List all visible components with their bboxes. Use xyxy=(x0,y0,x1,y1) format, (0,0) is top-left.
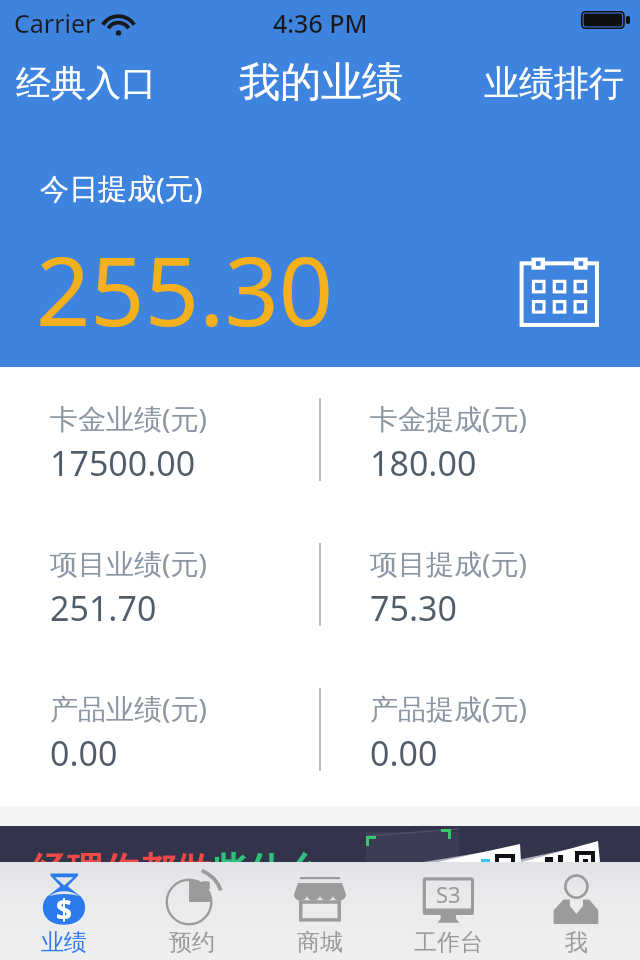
staticText: 预约 xyxy=(169,928,215,957)
staticText: 17500.00 xyxy=(50,440,196,486)
staticText: 255.30 xyxy=(36,224,334,353)
staticText: 75.30 xyxy=(370,585,457,631)
button[interactable]: 我 xyxy=(512,862,640,960)
staticText: 项目业绩(元) xyxy=(50,544,207,582)
staticText: 经典入口 xyxy=(16,61,156,105)
button[interactable]: S3 xyxy=(384,862,512,960)
button[interactable]: 项目提成(元) xyxy=(320,512,640,657)
button[interactable]: 卡金提成(元) xyxy=(320,367,640,512)
other: Battery xyxy=(581,11,630,29)
staticText: 工作台 xyxy=(414,928,483,957)
staticText: 卡金提成(元) xyxy=(370,399,527,437)
staticText: 我 xyxy=(565,928,588,957)
button[interactable]: 卡金业绩(元) xyxy=(0,367,320,512)
staticText: 项目提成(元) xyxy=(370,544,527,582)
staticText: 些什么 xyxy=(211,848,319,862)
staticText: 今日提成(元) xyxy=(40,168,203,208)
button[interactable]: 商城 xyxy=(256,862,384,960)
staticText: 业绩排行 xyxy=(484,61,624,105)
button[interactable]: 产品业绩(元) xyxy=(0,657,320,802)
staticText: S3 xyxy=(436,879,461,909)
button[interactable]: 我的业绩 xyxy=(214,57,427,109)
staticText: 产品业绩(元) xyxy=(50,689,207,727)
button[interactable]: Promotion banner xyxy=(0,826,640,862)
staticText: 4:36 PM xyxy=(273,6,368,40)
staticText: $ xyxy=(56,890,73,928)
staticText: 商城 xyxy=(297,928,343,957)
other: Calendar xyxy=(518,254,602,328)
button[interactable]: 经典入口 xyxy=(0,61,214,105)
staticText: 我的业绩 xyxy=(239,57,403,109)
staticText: 180.00 xyxy=(370,440,477,486)
staticText: 业绩 xyxy=(41,928,87,957)
staticText: 0.00 xyxy=(50,730,118,776)
button[interactable]: 预约 xyxy=(128,862,256,960)
staticText: 0.00 xyxy=(370,730,438,776)
button[interactable]: $ xyxy=(0,862,128,960)
staticText: 251.70 xyxy=(50,585,157,631)
button[interactable]: 产品提成(元) xyxy=(320,657,640,802)
button[interactable]: 业绩排行 xyxy=(427,61,640,105)
staticText: Carrier xyxy=(14,6,96,40)
staticText: 产品提成(元) xyxy=(370,689,527,727)
staticText: 卡金业绩(元) xyxy=(50,399,207,437)
button[interactable]: 项目业绩(元) xyxy=(0,512,320,657)
staticText: 经理你都做 xyxy=(31,848,211,862)
